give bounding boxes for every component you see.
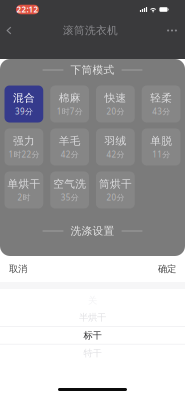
staticText: 羽绒 <box>104 134 126 147</box>
staticText: 羊毛 <box>59 134 81 147</box>
staticText: 轻柔 <box>150 91 172 104</box>
button[interactable]: 混合 <box>4 85 43 122</box>
staticText: 11分 <box>152 149 170 160</box>
staticText: 单脱 <box>150 134 172 147</box>
button[interactable]: 单脱 <box>142 128 181 165</box>
button[interactable]: 返回 <box>0 19 18 41</box>
staticText: 空气洗 <box>53 177 86 190</box>
button[interactable]: 取消 <box>0 256 36 282</box>
staticText: 22:12 <box>16 4 38 15</box>
staticText: 确定 <box>158 263 176 275</box>
button[interactable]: 筒烘干 <box>96 171 135 208</box>
staticText: 滚筒洗衣机 <box>63 24 118 37</box>
staticText: 39分 <box>15 106 33 117</box>
staticText: 关 <box>88 295 97 306</box>
staticText: 标干 <box>83 330 101 341</box>
staticText: 洗涤设置 <box>70 224 114 237</box>
button[interactable]: 确定 <box>149 256 185 282</box>
button[interactable]: 强力 <box>4 128 43 165</box>
staticText: 42分 <box>106 149 124 160</box>
staticText: 下筒模式 <box>70 63 114 76</box>
staticText: 42分 <box>61 149 79 160</box>
staticText: 20分 <box>106 106 124 117</box>
staticText: 取消 <box>9 263 27 275</box>
button[interactable]: 更多 <box>163 19 181 41</box>
staticText: 快速 <box>104 91 126 104</box>
staticText: 35分 <box>61 192 79 203</box>
staticText: 特干 <box>83 347 101 359</box>
staticText: 半烘干 <box>79 312 106 323</box>
staticText: 强力 <box>13 134 35 147</box>
staticText: 1时7分 <box>57 106 83 117</box>
staticText: 单烘干 <box>7 177 40 190</box>
button[interactable]: 单烘干 <box>4 171 43 208</box>
button[interactable]: 羊毛 <box>50 128 89 165</box>
button[interactable]: 羽绒 <box>96 128 135 165</box>
staticText: 20分 <box>106 192 124 203</box>
button[interactable]: 棉麻 <box>50 85 89 122</box>
button[interactable]: 快速 <box>96 85 135 122</box>
button[interactable]: 空气洗 <box>50 171 89 208</box>
button[interactable]: 轻柔 <box>142 85 181 122</box>
staticText: 2时 <box>17 192 30 203</box>
staticText: 混合 <box>13 91 35 104</box>
staticText: 筒烘干 <box>99 177 132 190</box>
staticText: 棉麻 <box>59 91 81 104</box>
staticText: 1时22分 <box>8 149 39 160</box>
staticText: 43分 <box>152 106 170 117</box>
